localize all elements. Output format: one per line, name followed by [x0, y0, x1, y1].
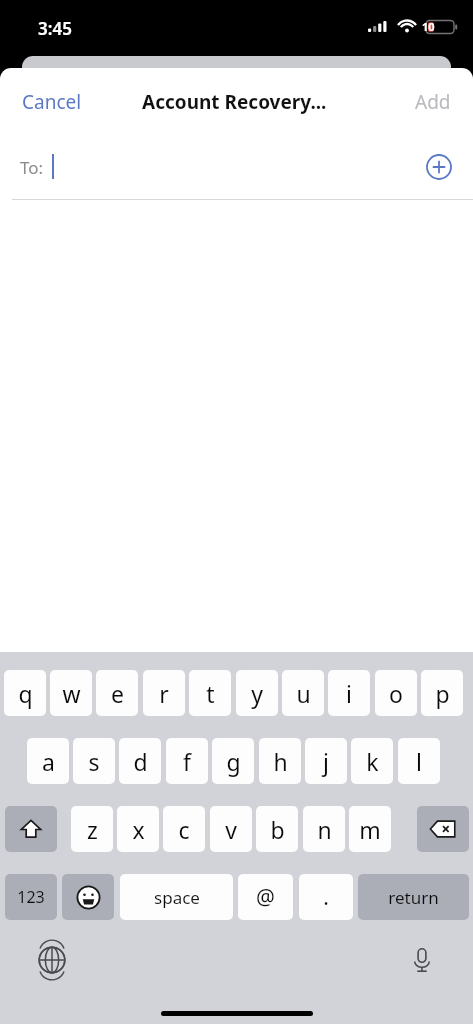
button[interactable]: r	[143, 670, 185, 716]
button[interactable]: v	[210, 806, 252, 852]
staticText: 10	[422, 19, 435, 34]
button[interactable]: Add	[401, 83, 465, 121]
button[interactable]: b	[256, 806, 298, 852]
button[interactable]: @	[238, 874, 293, 920]
button[interactable]: Emoji	[62, 874, 114, 920]
button[interactable]: j	[305, 738, 347, 784]
staticText: 123	[17, 886, 45, 908]
staticText: r	[159, 678, 169, 709]
staticText: k	[366, 746, 379, 777]
staticText: v	[225, 814, 237, 845]
button[interactable]: u	[282, 670, 324, 716]
button[interactable]: return	[358, 874, 469, 920]
button[interactable]: 123	[5, 874, 57, 920]
button[interactable]: h	[259, 738, 301, 784]
button[interactable]: x	[117, 806, 159, 852]
staticText: w	[62, 678, 81, 709]
button[interactable]: Shift	[5, 806, 57, 852]
staticText: l	[416, 746, 422, 777]
button[interactable]: w	[50, 670, 92, 716]
button[interactable]: s	[73, 738, 115, 784]
button[interactable]: i	[328, 670, 370, 716]
button[interactable]: q	[4, 670, 46, 716]
staticText: b	[270, 814, 285, 845]
button[interactable]: e	[96, 670, 138, 716]
button[interactable]: Backspace	[417, 806, 469, 852]
staticText: x	[132, 814, 145, 845]
button[interactable]: space	[120, 874, 233, 920]
staticText: f	[183, 746, 191, 777]
staticText: j	[323, 746, 329, 777]
button[interactable]: .	[299, 874, 353, 920]
staticText: p	[435, 678, 450, 709]
staticText: d	[133, 746, 148, 777]
staticText: i	[346, 678, 352, 709]
staticText: u	[296, 678, 311, 709]
button[interactable]: l	[398, 738, 440, 784]
staticText: q	[18, 678, 33, 709]
button[interactable]: a	[27, 738, 69, 784]
button[interactable]: t	[189, 670, 231, 716]
button[interactable]: o	[375, 670, 417, 716]
button[interactable]: f	[166, 738, 208, 784]
staticText: .	[323, 883, 329, 912]
staticText: t	[206, 678, 215, 709]
button[interactable]: Dictate	[402, 940, 442, 980]
button[interactable]: To:	[0, 135, 473, 199]
button[interactable]: Add contact	[422, 150, 456, 184]
button[interactable]: g	[212, 738, 254, 784]
button[interactable]: m	[349, 806, 391, 852]
staticText: Cancel	[22, 89, 82, 115]
staticText: n	[317, 814, 332, 845]
staticText: o	[389, 678, 403, 709]
button[interactable]: Cancel	[8, 83, 96, 121]
staticText: Account Recovery...	[142, 89, 327, 115]
staticText: y	[251, 678, 263, 709]
button[interactable]: c	[163, 806, 205, 852]
staticText: return	[388, 886, 439, 909]
staticText: s	[88, 746, 100, 777]
staticText: a	[42, 746, 55, 777]
staticText: space	[154, 886, 200, 909]
button[interactable]: d	[119, 738, 161, 784]
staticText: h	[273, 746, 288, 777]
staticText: z	[87, 814, 98, 845]
button[interactable]: y	[236, 670, 278, 716]
staticText: m	[359, 814, 381, 845]
button[interactable]: Change keyboard	[32, 940, 72, 980]
button[interactable]: n	[303, 806, 345, 852]
staticText: Add	[415, 89, 451, 115]
button[interactable]: k	[351, 738, 393, 784]
staticText: e	[111, 678, 124, 709]
button[interactable]: z	[71, 806, 113, 852]
staticText: g	[226, 746, 241, 777]
staticText: c	[178, 814, 190, 845]
staticText: @	[256, 883, 275, 912]
staticText: To:	[20, 156, 44, 179]
staticText: 3:45	[38, 17, 72, 40]
button[interactable]: p	[421, 670, 463, 716]
